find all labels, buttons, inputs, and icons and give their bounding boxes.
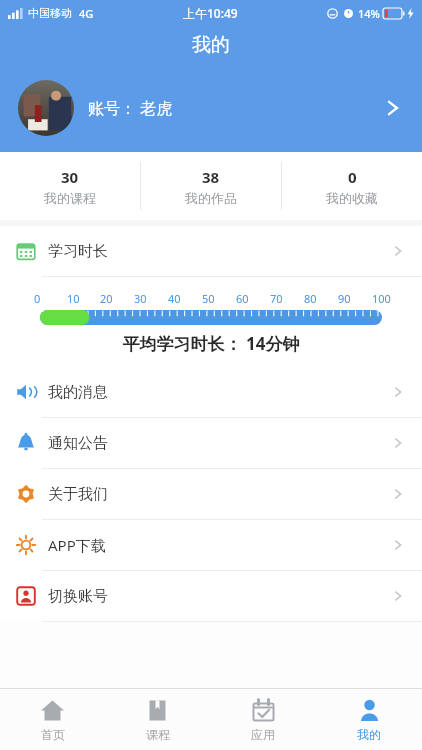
button[interactable]: 首页 <box>0 689 105 750</box>
staticText: 10 <box>67 291 80 306</box>
staticText: 课程 <box>146 727 170 742</box>
button[interactable]: 学习时长 <box>0 226 422 276</box>
button[interactable]: APP下载 <box>0 520 422 570</box>
staticText: 30 <box>134 291 147 306</box>
staticText: 14% <box>358 6 380 21</box>
staticText: 38 <box>202 167 220 187</box>
button[interactable]: 0 <box>282 152 422 220</box>
staticText: 切换账号 <box>48 587 108 606</box>
staticText: 学习时长 <box>48 242 108 261</box>
staticText: 上午10:49 <box>183 5 238 21</box>
button[interactable]: 我的消息 <box>0 367 422 417</box>
staticText: 30 <box>61 167 79 187</box>
staticText: 应用 <box>251 727 275 742</box>
staticText: 首页 <box>41 727 65 742</box>
staticText: 我的课程 <box>44 190 96 206</box>
staticText: 0 <box>348 167 357 187</box>
staticText: 我的消息 <box>48 383 108 402</box>
staticText: 通知公告 <box>48 434 108 453</box>
staticText: 0 <box>34 291 41 306</box>
staticText: 20 <box>100 291 113 306</box>
staticText: 50 <box>202 291 215 306</box>
staticText: 账号： 老虎 <box>88 97 173 119</box>
staticText: 100 <box>372 291 391 306</box>
button[interactable]: 账号： 老虎 <box>0 63 422 152</box>
button[interactable]: 我的 <box>316 689 422 750</box>
button[interactable]: 应用 <box>210 689 316 750</box>
staticText: 70 <box>270 291 283 306</box>
staticText: 关于我们 <box>48 485 108 504</box>
staticText: 我的 <box>192 33 230 57</box>
staticText: 40 <box>168 291 181 306</box>
staticText: 60 <box>236 291 249 306</box>
button[interactable]: 38 <box>141 152 281 220</box>
staticText: 80 <box>304 291 317 306</box>
button[interactable]: 课程 <box>105 689 210 750</box>
staticText: 我的作品 <box>185 190 237 206</box>
staticText: 我的收藏 <box>326 190 378 206</box>
button[interactable]: 切换账号 <box>0 571 422 621</box>
staticText: 平均学习时长： 14分钟 <box>0 332 422 355</box>
staticText: 90 <box>338 291 351 306</box>
staticText: APP下载 <box>48 535 106 555</box>
button[interactable]: 30 <box>0 152 140 220</box>
staticText: 中国移动 <box>28 6 72 20</box>
button[interactable]: 通知公告 <box>0 418 422 468</box>
staticText: 我的 <box>357 727 381 742</box>
button[interactable]: 关于我们 <box>0 469 422 519</box>
staticText: 4G <box>79 6 94 21</box>
